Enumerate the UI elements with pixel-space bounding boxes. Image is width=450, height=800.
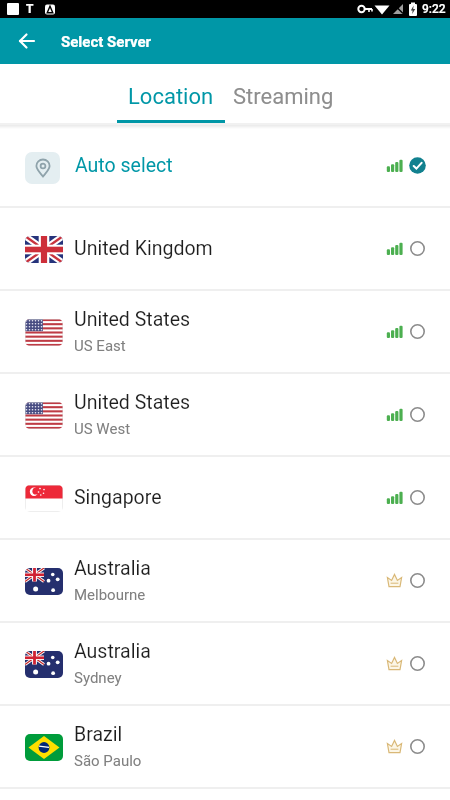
button[interactable]: United Kingdom (0, 208, 450, 291)
staticText: Location (128, 84, 214, 110)
button[interactable]: Singapore (0, 457, 450, 540)
staticText: US East (74, 337, 126, 355)
button[interactable]: United States (0, 291, 450, 374)
button[interactable] (13, 27, 41, 55)
button[interactable]: Streaming (227, 66, 339, 127)
staticText: United States (74, 391, 191, 414)
staticText: São Paulo (74, 752, 142, 770)
staticText: T (26, 2, 34, 16)
button[interactable]: Brazil (0, 706, 450, 789)
staticText: US West (74, 420, 131, 438)
staticText: United Kingdom (74, 237, 213, 260)
staticText: Sydney (74, 669, 122, 687)
staticText: Singapore (74, 486, 162, 509)
staticText: 9:22 (422, 2, 446, 16)
staticText: Australia (74, 557, 151, 580)
staticText: United States (74, 308, 191, 331)
button[interactable]: Australia (0, 623, 450, 706)
staticText: Auto select (75, 154, 173, 177)
staticText: Australia (74, 640, 151, 663)
button[interactable]: United States (0, 374, 450, 457)
staticText: Streaming (233, 84, 334, 110)
staticText: Select Server (61, 33, 152, 51)
staticText: Melbourne (74, 586, 146, 604)
button[interactable]: Auto select (0, 125, 450, 208)
button[interactable]: Location (115, 66, 227, 127)
staticText: Brazil (74, 723, 123, 746)
button[interactable]: Australia (0, 540, 450, 623)
